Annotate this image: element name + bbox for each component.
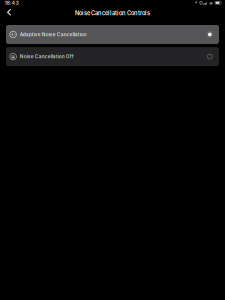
staticText: Noise Cancellation Off [20,54,74,59]
staticText: 18:43 [5,0,19,6]
staticText: Noise Cancellation Controls [75,10,150,17]
staticText: Adaptive Noise Cancellation [20,32,87,37]
button[interactable]: Adaptive Noise Cancellation [6,25,219,44]
button[interactable]: Back [3,6,15,18]
button[interactable]: Noise Cancellation Off [6,47,219,66]
